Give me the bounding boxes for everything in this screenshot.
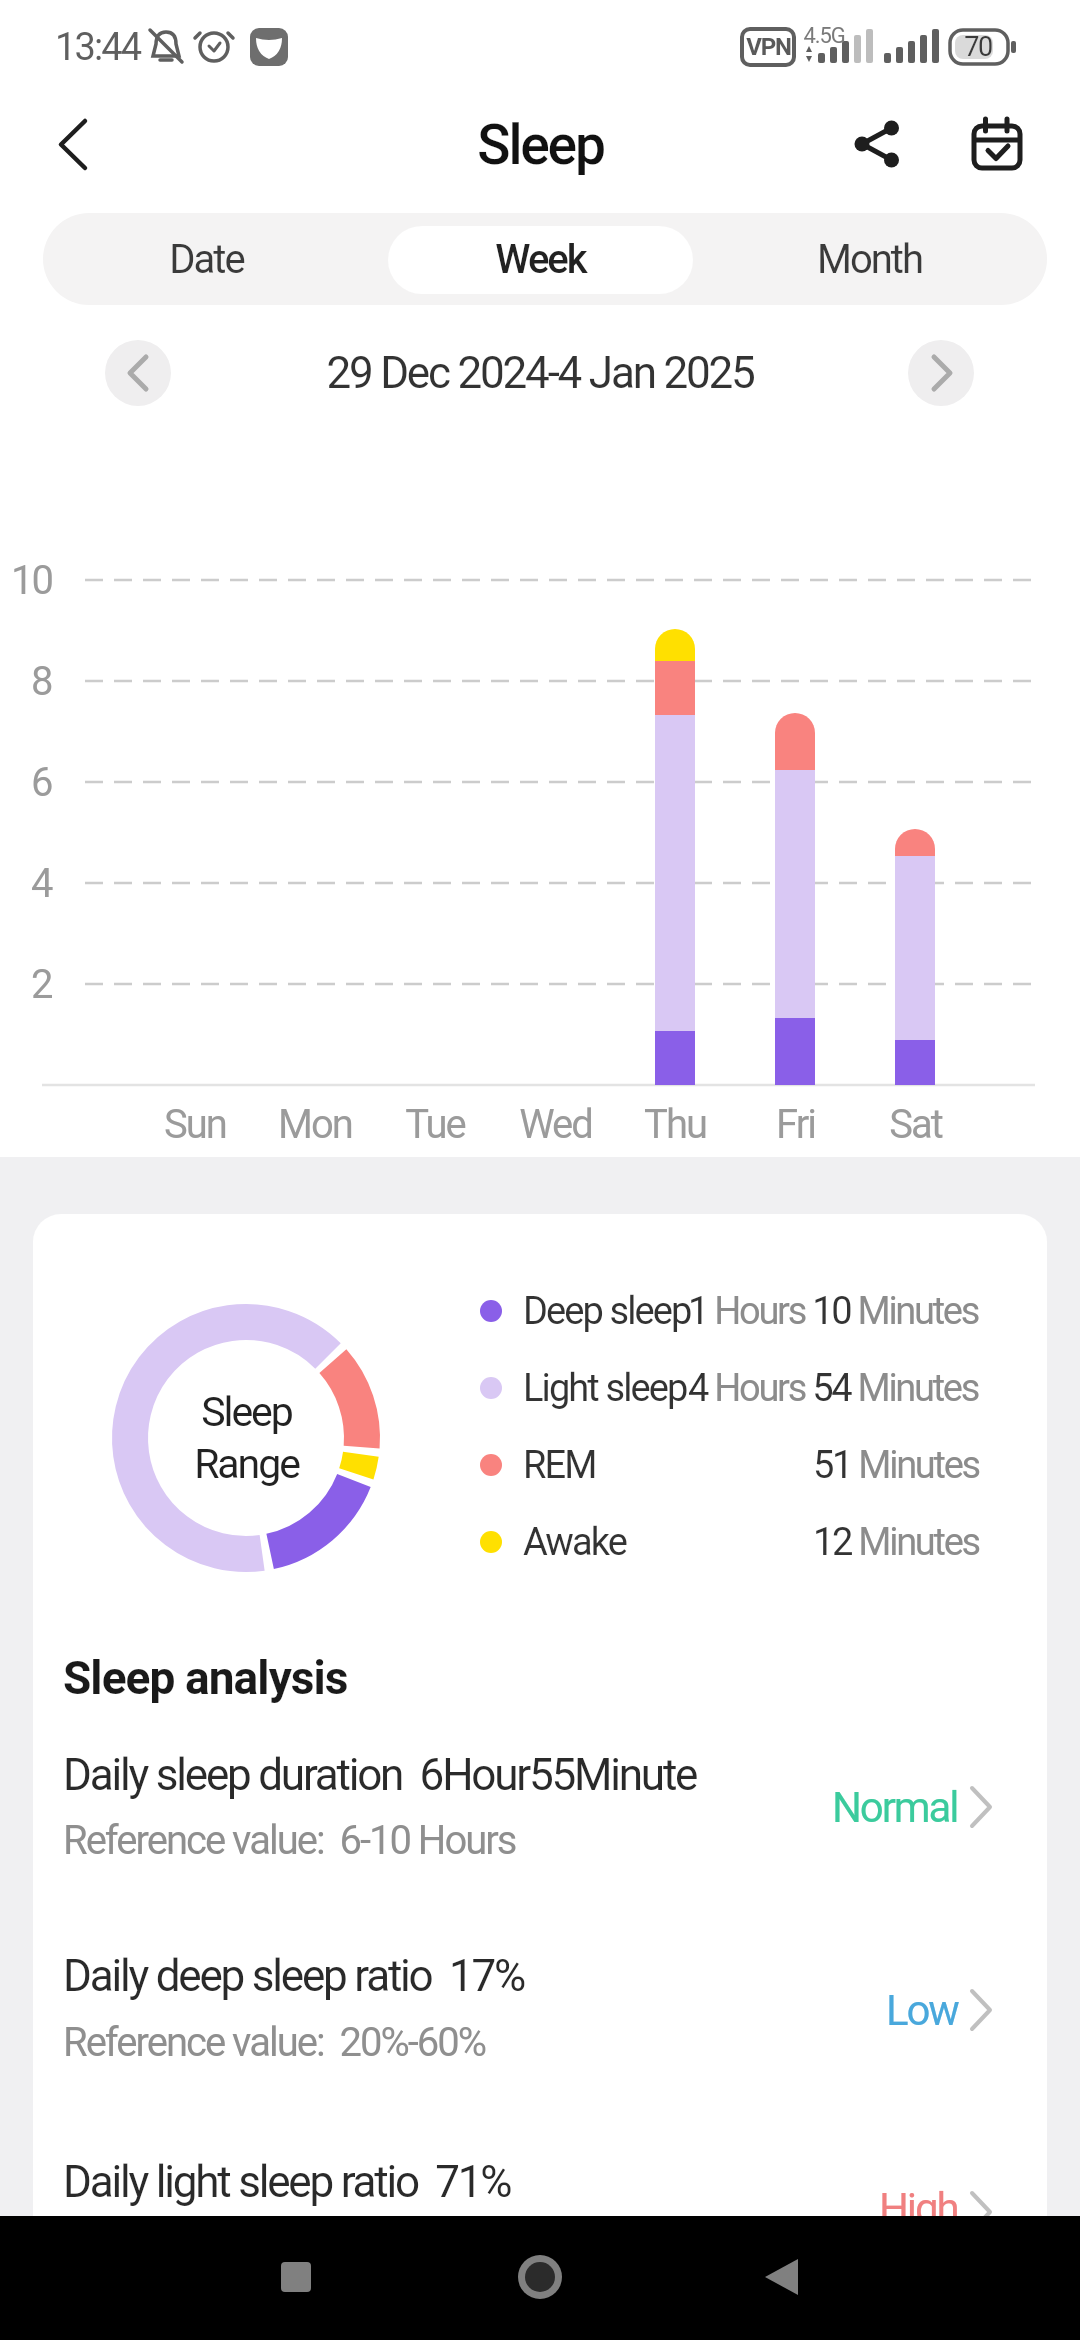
staticText: Thu: [644, 1101, 706, 1148]
staticText: 29 Dec 2024-4 Jan 2025: [326, 347, 754, 399]
staticText: Daily light sleep ratio 71%: [63, 2156, 511, 2208]
staticText: Light sleep: [523, 1366, 687, 1411]
button[interactable]: [105, 340, 171, 406]
staticText: Deep sleep: [523, 1289, 691, 1334]
staticText: 1 Hours 10 Minutes: [688, 1289, 979, 1334]
staticText: Daily sleep duration 6Hour55Minute: [63, 1749, 697, 1801]
staticText: REM: [523, 1443, 596, 1488]
staticText: Daily deep sleep ratio 17%: [63, 1950, 525, 2002]
button[interactable]: [377, 213, 712, 305]
staticText: Date: [169, 236, 244, 283]
staticText: Tue: [405, 1101, 465, 1148]
staticText: Sun: [164, 1101, 226, 1148]
staticText: 10: [11, 557, 52, 604]
button[interactable]: [30, 100, 130, 190]
button[interactable]: [360, 2216, 720, 2340]
staticText: Reference value: 20%-60%: [63, 2019, 485, 2066]
button[interactable]: [712, 213, 1047, 305]
staticText: Sleep: [477, 113, 604, 177]
staticText: Awake: [523, 1520, 626, 1565]
button[interactable]: [960, 105, 1035, 185]
staticText: 70: [964, 31, 992, 63]
staticText: Sleep analysis: [63, 1651, 348, 1705]
staticText: 51 Minutes: [813, 1443, 979, 1488]
staticText: Sleep Range: [194, 1388, 299, 1488]
staticText: 4 Hours 54 Minutes: [688, 1366, 979, 1411]
button[interactable]: [43, 213, 377, 305]
staticText: 2: [31, 961, 52, 1008]
button[interactable]: [840, 105, 915, 185]
staticText: Fri: [776, 1101, 815, 1148]
staticText: Reference value: 6-10 Hours: [63, 1817, 516, 1864]
staticText: 4: [31, 860, 52, 907]
button[interactable]: [720, 2216, 1080, 2340]
staticText: Wed: [519, 1101, 592, 1148]
staticText: 8: [31, 658, 52, 705]
staticText: Normal: [832, 1783, 958, 1832]
staticText: High: [879, 2184, 958, 2233]
button[interactable]: [0, 2216, 360, 2340]
staticText: VPN: [746, 33, 791, 61]
button[interactable]: [33, 1725, 1047, 1895]
staticText: Sat: [889, 1101, 942, 1148]
staticText: 13:44: [55, 25, 141, 70]
staticText: Low: [886, 1986, 958, 2035]
staticText: Month: [817, 236, 922, 283]
staticText: 12 Minutes: [813, 1520, 979, 1565]
staticText: Mon: [278, 1101, 352, 1148]
button[interactable]: [33, 2130, 1047, 2216]
staticText: 4.5G: [803, 23, 845, 49]
staticText: 6: [31, 759, 52, 806]
button[interactable]: [33, 1925, 1047, 2095]
button[interactable]: [908, 340, 974, 406]
staticText: Week: [495, 236, 586, 283]
